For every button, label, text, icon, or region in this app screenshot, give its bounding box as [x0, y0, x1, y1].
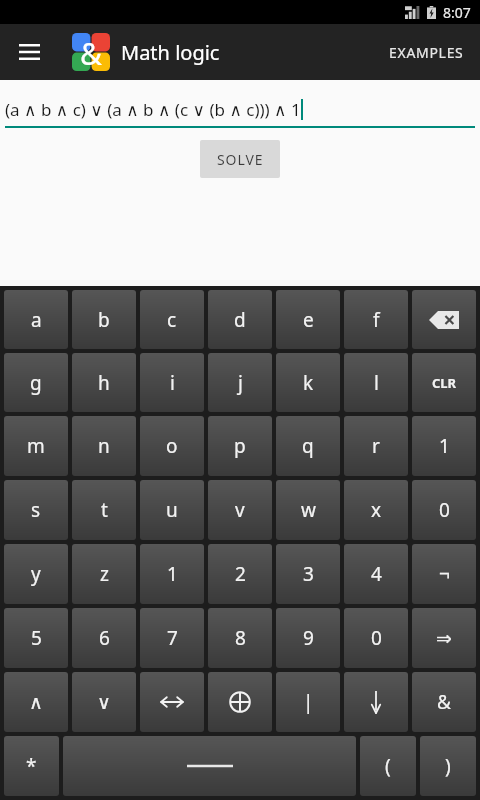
staticText: a	[31, 307, 42, 333]
staticText: e	[303, 307, 314, 333]
staticText: k	[303, 370, 314, 396]
staticText: v	[235, 497, 245, 523]
staticText: 3	[303, 561, 314, 587]
button[interactable]: 6	[72, 608, 136, 668]
staticText: 1	[167, 561, 178, 587]
button[interactable]: CLR	[412, 353, 476, 412]
staticText: y	[31, 561, 41, 587]
button[interactable]: SOLVE	[200, 140, 280, 178]
staticText: p	[234, 433, 246, 459]
button[interactable]: If and only if	[140, 672, 204, 732]
button[interactable]: ∧	[4, 672, 68, 732]
button[interactable]: Space	[63, 736, 356, 796]
staticText: &	[80, 33, 102, 71]
staticText: z	[100, 561, 109, 587]
staticText: 8:07	[443, 3, 471, 22]
button[interactable]: z	[72, 544, 136, 604]
staticText: g	[30, 370, 42, 396]
staticText: u	[166, 497, 178, 523]
staticText: d	[234, 307, 246, 333]
button[interactable]: 5	[4, 608, 68, 668]
button[interactable]: o	[140, 416, 204, 476]
button[interactable]: ¬	[412, 544, 476, 604]
button[interactable]: x	[344, 480, 408, 540]
button[interactable]: Open navigation menu	[7, 30, 51, 74]
staticText: ∧	[29, 691, 43, 713]
button[interactable]: q	[276, 416, 340, 476]
button[interactable]: EXAMPLES	[379, 31, 474, 74]
button[interactable]: i	[140, 353, 204, 412]
button[interactable]: t	[72, 480, 136, 540]
button[interactable]: a	[4, 290, 68, 349]
button[interactable]: Backspace	[412, 290, 476, 349]
button[interactable]: w	[276, 480, 340, 540]
staticText: ⇒	[436, 627, 452, 649]
button[interactable]: 9	[276, 608, 340, 668]
staticText: (a ∧ b ∧ c) ∨ (a ∧ b ∧ (c ∨ (b ∧ c))) ∧ …	[5, 98, 301, 121]
staticText: r	[372, 433, 380, 459]
button[interactable]: ∨	[72, 672, 136, 732]
button[interactable]: n	[72, 416, 136, 476]
button[interactable]: f	[344, 290, 408, 349]
staticText: 6	[99, 625, 110, 651]
staticText: q	[302, 433, 314, 459]
button[interactable]: 8	[208, 608, 272, 668]
staticText: l	[374, 370, 379, 396]
button[interactable]: 4	[344, 544, 408, 604]
button[interactable]: 3	[276, 544, 340, 604]
button[interactable]: d	[208, 290, 272, 349]
staticText: b	[98, 307, 110, 333]
staticText: 4	[371, 561, 382, 587]
button[interactable]: 1	[140, 544, 204, 604]
button[interactable]: |	[276, 672, 340, 732]
button[interactable]: k	[276, 353, 340, 412]
staticText: Math logic	[121, 39, 220, 66]
button[interactable]: Nor	[344, 672, 408, 732]
button[interactable]: l	[344, 353, 408, 412]
button[interactable]: v	[208, 480, 272, 540]
staticText: (	[385, 753, 391, 779]
button[interactable]: 2	[208, 544, 272, 604]
staticText: o	[166, 433, 178, 459]
staticText: 7	[167, 625, 178, 651]
button[interactable]: 7	[140, 608, 204, 668]
staticText: |	[303, 689, 314, 715]
button[interactable]: s	[4, 480, 68, 540]
staticText: w	[301, 497, 316, 523]
button[interactable]: j	[208, 353, 272, 412]
button[interactable]: 1	[412, 416, 476, 476]
staticText: SOLVE	[217, 150, 264, 169]
staticText: 5	[31, 625, 42, 651]
button[interactable]: m	[4, 416, 68, 476]
button[interactable]: e	[276, 290, 340, 349]
button[interactable]: &	[412, 672, 476, 732]
button[interactable]: p	[208, 416, 272, 476]
button[interactable]: r	[344, 416, 408, 476]
button[interactable]: (a ∧ b ∧ c) ∨ (a ∧ b ∧ (c ∨ (b ∧ c))) ∧ …	[5, 96, 475, 122]
staticText: m	[27, 433, 45, 459]
staticText: EXAMPLES	[389, 43, 464, 62]
button[interactable]: g	[4, 353, 68, 412]
button[interactable]: *	[4, 736, 59, 796]
staticText: 1	[439, 433, 450, 459]
button[interactable]: Implies	[412, 608, 476, 668]
button[interactable]: 0	[412, 480, 476, 540]
button[interactable]: y	[4, 544, 68, 604]
button[interactable]: b	[72, 290, 136, 349]
button[interactable]: c	[140, 290, 204, 349]
button[interactable]: Exclusive or	[208, 672, 272, 732]
staticText: c	[167, 307, 177, 333]
staticText: x	[371, 497, 382, 523]
button[interactable]: h	[72, 353, 136, 412]
button[interactable]: u	[140, 480, 204, 540]
staticText: ∨	[97, 691, 111, 713]
staticText: 8	[235, 625, 246, 651]
staticText: t	[101, 497, 108, 523]
staticText: s	[31, 497, 41, 523]
staticText: CLR	[432, 374, 457, 392]
staticText: ¬	[439, 561, 450, 587]
button[interactable]: 0	[344, 608, 408, 668]
button[interactable]: (	[360, 736, 416, 796]
button[interactable]: )	[420, 736, 476, 796]
staticText: 9	[303, 625, 314, 651]
